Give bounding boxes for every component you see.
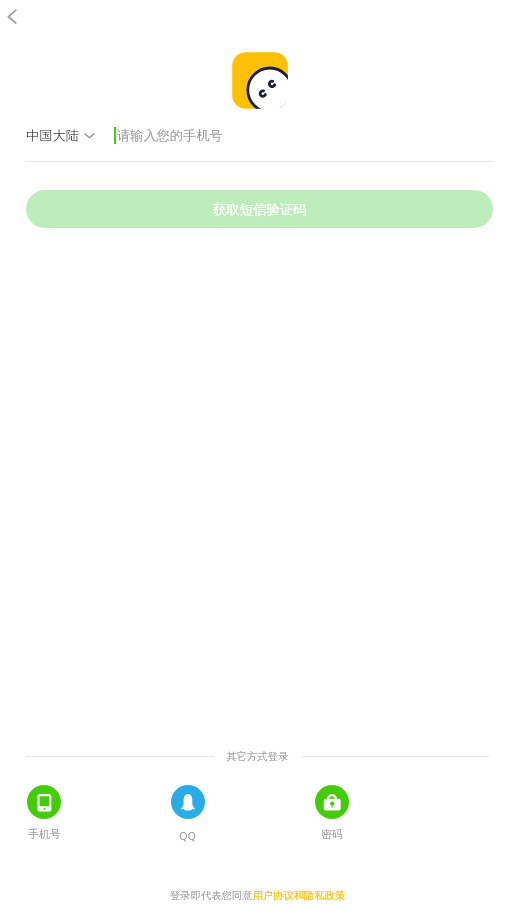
button[interactable]: 密码 xyxy=(314,785,350,842)
button[interactable]: 登录即代表您同意用户协议和隐私政策 xyxy=(170,889,346,902)
button[interactable]: 获取短信验证码 xyxy=(26,190,493,228)
staticText: 其它方式登录 xyxy=(226,750,289,763)
staticText: 获取短信验证码 xyxy=(213,201,307,218)
staticText: 请输入您的手机号 xyxy=(117,127,223,144)
staticText: 手机号 xyxy=(28,828,61,842)
staticText: QQ xyxy=(179,828,197,843)
button[interactable]: Back xyxy=(0,4,28,32)
staticText: 密码 xyxy=(321,828,343,842)
button[interactable]: 请输入您的手机号 xyxy=(114,127,515,144)
button[interactable]: 手机号 xyxy=(26,785,62,842)
button[interactable]: QQ xyxy=(170,785,206,843)
staticText: 中国大陆 xyxy=(26,127,79,144)
button[interactable]: 中国大陆 xyxy=(26,127,95,144)
